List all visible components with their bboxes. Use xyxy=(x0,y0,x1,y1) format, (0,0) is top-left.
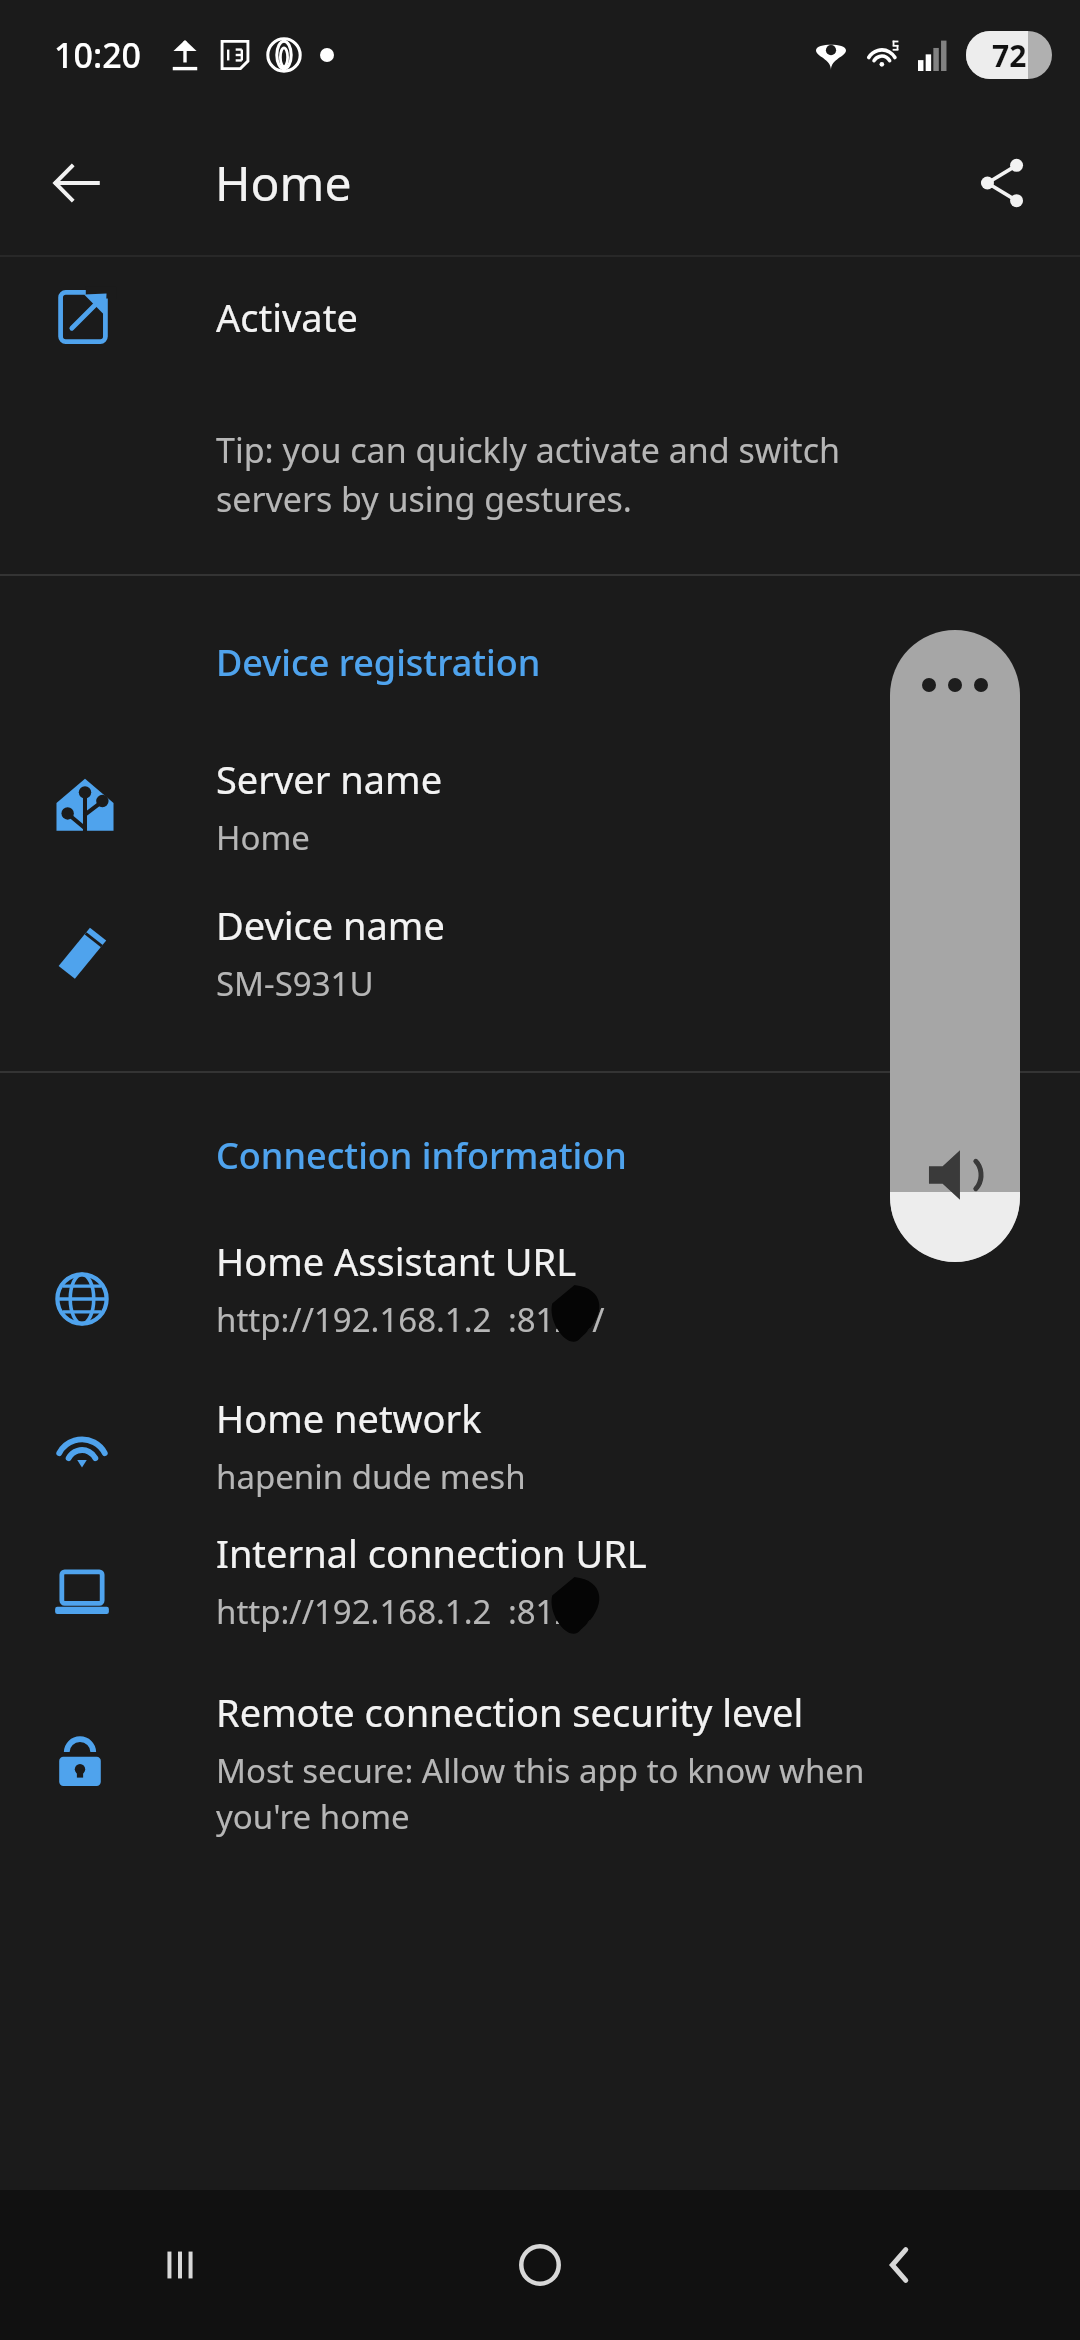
button[interactable]: Internal connection URL xyxy=(0,1518,1080,1664)
staticText: Device registration xyxy=(216,638,541,687)
staticText: Device name xyxy=(216,899,445,951)
staticText: Home Assistant URL xyxy=(216,1235,577,1287)
button[interactable]: Remote connection security level xyxy=(0,1664,1080,1860)
button[interactable]: Share xyxy=(952,133,1052,233)
staticText: 72 xyxy=(992,35,1027,76)
staticText: Remote connection security level xyxy=(216,1686,804,1738)
staticText: http://192.168.1.2 :8123 xyxy=(216,1589,593,1634)
button[interactable]: Recents xyxy=(0,2190,360,2340)
button[interactable]: Activate xyxy=(0,257,1080,377)
button[interactable]: Back xyxy=(720,2190,1080,2340)
button[interactable]: Home xyxy=(360,2190,720,2340)
staticText: Server name xyxy=(216,753,443,805)
staticText: hapenin dude mesh xyxy=(216,1454,526,1499)
staticText: Home xyxy=(215,150,352,215)
staticText: Most secure: Allow this app to know when… xyxy=(216,1748,865,1839)
staticText: http://192.168.1.2 :8123/ xyxy=(216,1297,605,1342)
staticText: Home xyxy=(216,815,310,860)
staticText: Internal connection URL xyxy=(216,1527,647,1579)
button[interactable]: Back xyxy=(26,133,126,233)
staticText: Activate xyxy=(216,291,358,343)
staticText: Tip: you can quickly activate and switch… xyxy=(216,427,840,522)
staticText: Connection information xyxy=(216,1131,627,1180)
staticText: Home network xyxy=(216,1392,482,1444)
button[interactable]: Server name xyxy=(0,733,1080,879)
staticText: SM-S931U xyxy=(216,961,374,1006)
staticText: 10:20 xyxy=(54,32,142,78)
button[interactable]: Home network xyxy=(0,1372,1080,1518)
button[interactable]: Volume xyxy=(890,630,1020,1262)
button[interactable]: Device name xyxy=(0,879,1080,1025)
button[interactable]: Home Assistant URL xyxy=(0,1226,1080,1372)
